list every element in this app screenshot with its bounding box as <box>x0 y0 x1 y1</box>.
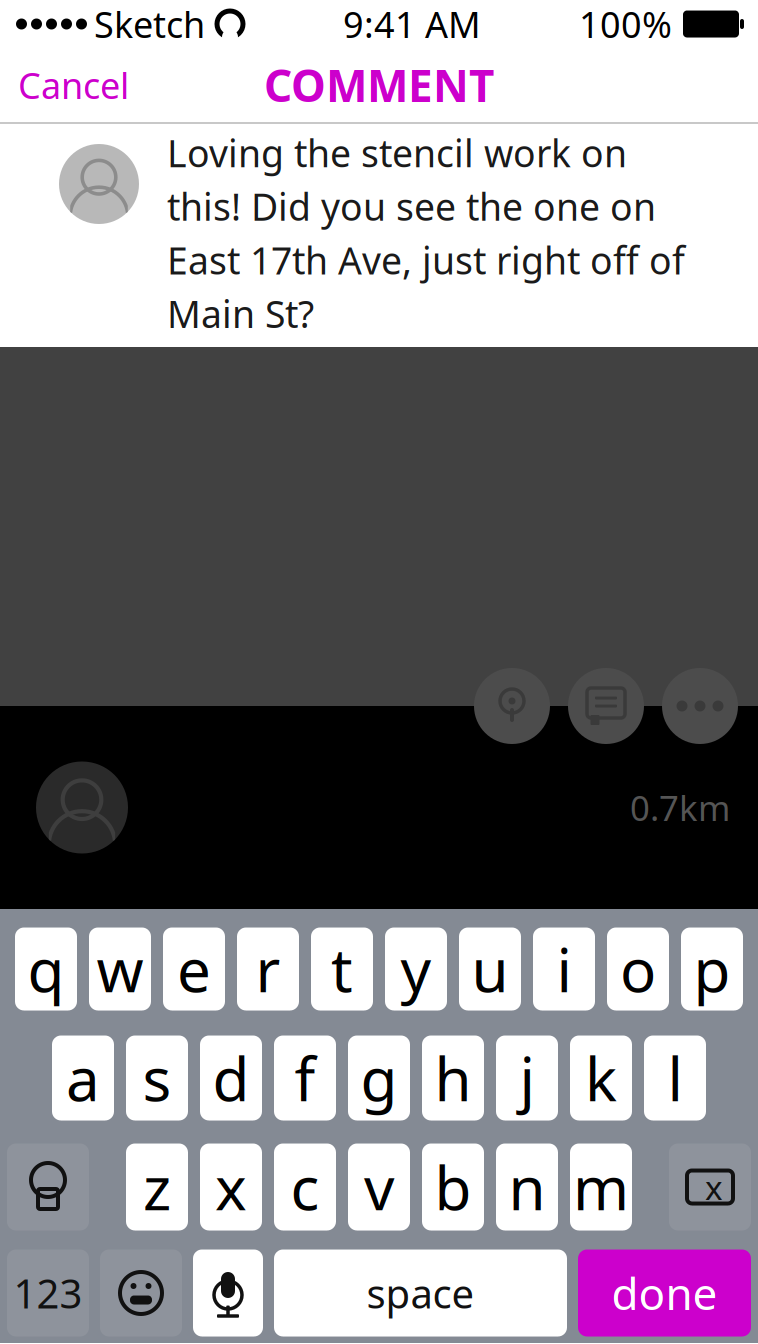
staticText: done <box>611 1264 717 1322</box>
staticText: Loving the stencil work on this! Did you… <box>167 128 685 338</box>
staticText: c <box>290 1147 319 1227</box>
staticText: t <box>331 929 353 1009</box>
staticText: a <box>66 1038 100 1118</box>
button[interactable]: Shift <box>7 1143 89 1230</box>
staticText: s <box>142 1038 171 1118</box>
button[interactable]: q <box>15 927 77 1010</box>
button[interactable]: z <box>126 1143 188 1230</box>
button[interactable]: p <box>681 927 743 1010</box>
button[interactable]: y <box>385 927 447 1010</box>
staticText: q <box>27 929 64 1009</box>
button[interactable]: More options <box>662 668 738 744</box>
button[interactable]: a <box>52 1035 114 1120</box>
staticText: h <box>434 1038 471 1118</box>
staticText: 9:41 AM <box>343 0 481 48</box>
button[interactable]: Cancel <box>0 47 149 123</box>
button[interactable]: i <box>533 927 595 1010</box>
button[interactable]: o <box>607 927 669 1010</box>
button[interactable]: Comments <box>568 668 644 744</box>
staticText: j <box>519 1038 534 1118</box>
button[interactable]: v <box>348 1143 410 1230</box>
button[interactable]: g <box>348 1035 410 1120</box>
staticText: Sketch <box>94 0 205 48</box>
button[interactable]: b <box>422 1143 484 1230</box>
staticText: y <box>400 929 431 1009</box>
staticText: e <box>177 929 211 1009</box>
button[interactable]: Delete <box>669 1143 751 1230</box>
button[interactable]: d <box>200 1035 262 1120</box>
staticText: Cancel <box>18 61 129 109</box>
button[interactable]: w <box>89 927 151 1010</box>
staticText: p <box>693 929 730 1009</box>
button[interactable]: m <box>570 1143 632 1230</box>
staticText: d <box>212 1038 249 1118</box>
staticText: x <box>705 1165 723 1209</box>
button[interactable]: 123 <box>7 1249 89 1336</box>
staticText: n <box>508 1147 545 1227</box>
button[interactable]: e <box>163 927 225 1010</box>
staticText: w <box>96 929 143 1009</box>
staticText: b <box>434 1147 471 1227</box>
button[interactable]: u <box>459 927 521 1010</box>
staticText: u <box>471 929 508 1009</box>
staticText: x <box>215 1147 247 1227</box>
button[interactable]: n <box>496 1143 558 1230</box>
staticText: g <box>360 1038 397 1118</box>
staticText: space <box>366 1266 474 1319</box>
button[interactable]: done <box>578 1249 751 1336</box>
button[interactable]: k <box>570 1035 632 1120</box>
button[interactable]: f <box>274 1035 336 1120</box>
staticText: 123 <box>13 1266 82 1319</box>
button[interactable]: s <box>126 1035 188 1120</box>
button[interactable]: x <box>200 1143 262 1230</box>
staticText: z <box>143 1147 171 1227</box>
staticText: i <box>556 929 571 1009</box>
staticText: r <box>255 929 280 1009</box>
button[interactable]: j <box>496 1035 558 1120</box>
staticText: 100% <box>579 0 672 48</box>
staticText: 0.7km <box>630 784 730 830</box>
button[interactable]: Dictate <box>193 1249 263 1336</box>
button[interactable]: l <box>644 1035 706 1120</box>
button[interactable]: t <box>311 927 373 1010</box>
staticText: f <box>294 1038 315 1118</box>
staticText: k <box>585 1038 617 1118</box>
button[interactable]: c <box>274 1143 336 1230</box>
staticText: COMMENT <box>264 56 494 114</box>
staticText: o <box>620 929 656 1009</box>
button[interactable]: r <box>237 927 299 1010</box>
button[interactable]: h <box>422 1035 484 1120</box>
staticText: l <box>667 1038 682 1118</box>
staticText: m <box>573 1147 629 1227</box>
button[interactable]: Emoji <box>100 1249 182 1336</box>
button[interactable]: space <box>274 1249 567 1336</box>
button[interactable]: Location <box>474 668 550 744</box>
staticText: v <box>364 1147 394 1227</box>
